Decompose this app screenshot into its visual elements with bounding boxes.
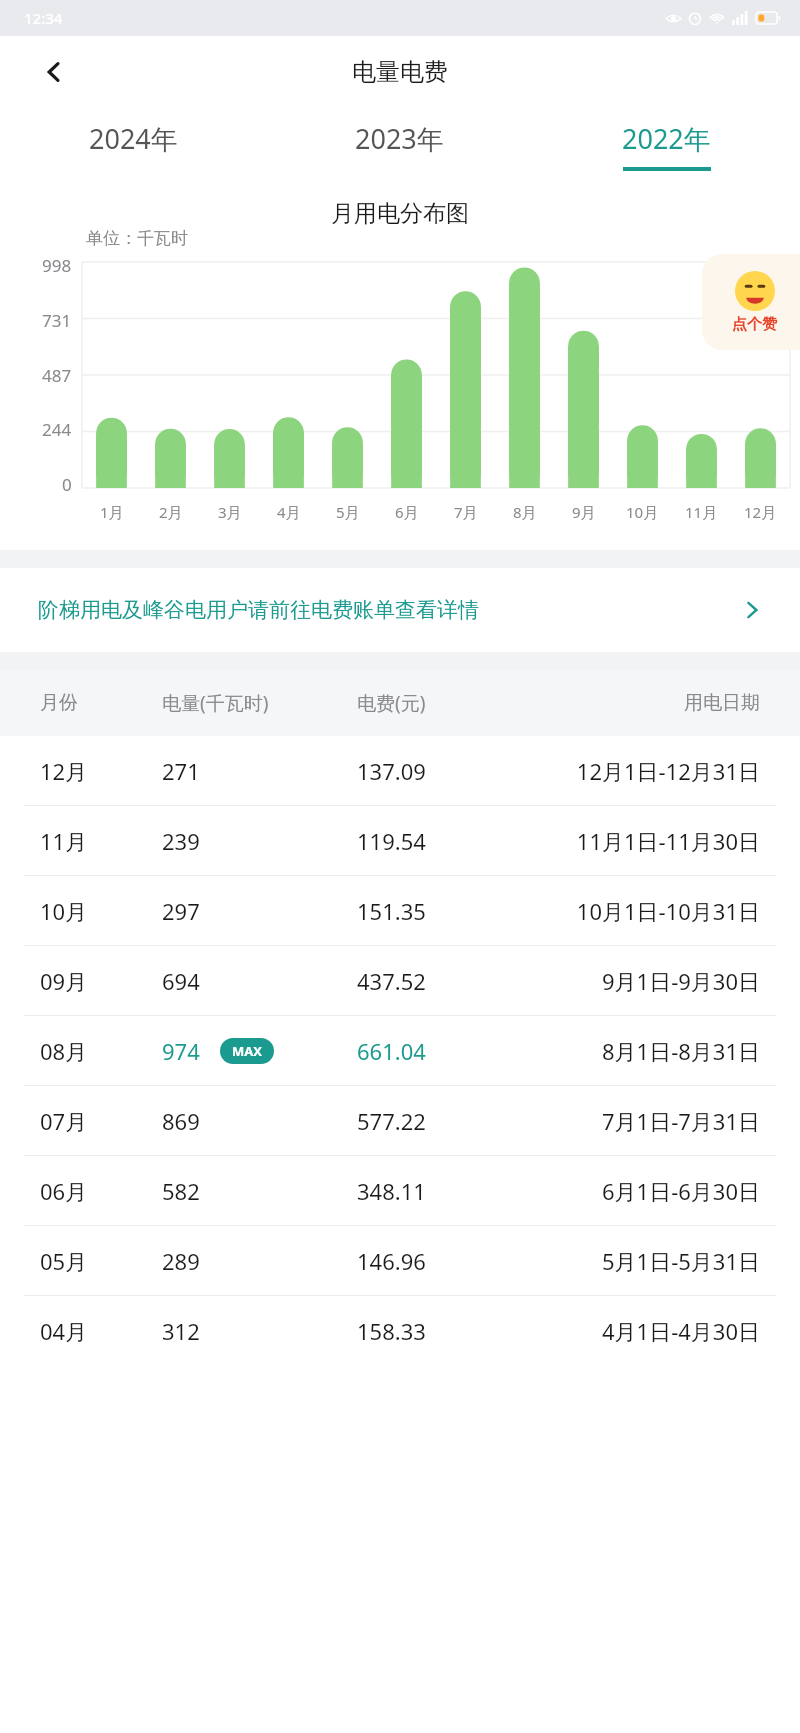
- button[interactable]: 点个赞: [702, 254, 800, 350]
- staticText: 点个赞: [732, 315, 777, 334]
- button[interactable]: 05月: [0, 1226, 800, 1295]
- staticText: 12月: [40, 756, 162, 786]
- staticText: 9月: [572, 502, 596, 522]
- staticText: 119.54: [357, 826, 540, 856]
- button[interactable]: 11月: [0, 806, 800, 875]
- staticText: 998: [42, 254, 72, 277]
- staticText: 137.09: [357, 756, 540, 786]
- staticText: 2月: [159, 502, 183, 522]
- button[interactable]: 07月: [0, 1086, 800, 1155]
- staticText: 月份: [40, 691, 162, 715]
- staticText: 阶梯用电及峰谷电用户请前往电费账单查看详情: [38, 597, 742, 623]
- staticText: 158.33: [357, 1316, 540, 1346]
- staticText: 271: [162, 756, 200, 786]
- staticText: 694: [162, 966, 200, 996]
- staticText: 582: [162, 1176, 200, 1206]
- staticText: 312: [162, 1316, 200, 1346]
- staticText: 12:34: [24, 8, 63, 28]
- staticText: 1月: [100, 502, 124, 522]
- staticText: 5月1日-5月31日: [540, 1246, 760, 1276]
- button[interactable]: 09月: [0, 946, 800, 1015]
- staticText: 5月: [336, 502, 360, 522]
- staticText: 6月1日-6月30日: [540, 1176, 760, 1206]
- staticText: 08月: [40, 1036, 162, 1066]
- staticText: 2024年: [89, 120, 178, 157]
- button[interactable]: 2023年: [266, 108, 533, 183]
- staticText: 电量电费: [352, 57, 448, 87]
- staticText: 244: [42, 418, 72, 441]
- button[interactable]: 04月: [0, 1296, 800, 1365]
- staticText: 电量(千瓦时): [162, 690, 357, 716]
- staticText: 577.22: [357, 1106, 540, 1136]
- staticText: 11月: [40, 826, 162, 856]
- staticText: 974: [162, 1036, 200, 1066]
- staticText: 10月1日-10月31日: [540, 896, 760, 926]
- staticText: 151.35: [357, 896, 540, 926]
- staticText: 437.52: [357, 966, 540, 996]
- staticText: 11月: [685, 502, 718, 522]
- staticText: 239: [162, 826, 200, 856]
- staticText: 04月: [40, 1316, 162, 1346]
- staticText: 07月: [40, 1106, 162, 1136]
- button[interactable]: 2022年: [533, 108, 800, 183]
- staticText: 电费(元): [357, 690, 540, 716]
- staticText: 05月: [40, 1246, 162, 1276]
- staticText: 8月1日-8月31日: [540, 1036, 760, 1066]
- staticText: 用电日期: [540, 691, 760, 715]
- button[interactable]: 阶梯用电及峰谷电用户请前往电费账单查看详情: [0, 568, 800, 652]
- staticText: 2023年: [355, 120, 444, 157]
- staticText: 12月: [744, 502, 777, 522]
- staticText: 487: [42, 364, 72, 387]
- staticText: 4月: [277, 502, 301, 522]
- staticText: 297: [162, 896, 200, 926]
- staticText: 661.04: [357, 1036, 540, 1066]
- staticText: 869: [162, 1106, 200, 1136]
- staticText: 9月1日-9月30日: [540, 966, 760, 996]
- staticText: 289: [162, 1246, 200, 1276]
- button[interactable]: 10月: [0, 876, 800, 945]
- staticText: 7月: [454, 502, 478, 522]
- staticText: 3月: [218, 502, 242, 522]
- staticText: 12月1日-12月31日: [540, 756, 760, 786]
- staticText: 348.11: [357, 1176, 540, 1206]
- staticText: 06月: [40, 1176, 162, 1206]
- button[interactable]: 08月: [0, 1016, 800, 1085]
- staticText: 8月: [513, 502, 537, 522]
- staticText: 6月: [395, 502, 419, 522]
- button[interactable]: 12月: [0, 736, 800, 805]
- staticText: 7月1日-7月31日: [540, 1106, 760, 1136]
- staticText: 2022年: [622, 120, 711, 157]
- staticText: 4月1日-4月30日: [540, 1316, 760, 1346]
- staticText: 731: [42, 309, 72, 332]
- staticText: 09月: [40, 966, 162, 996]
- staticText: 10月: [626, 502, 659, 522]
- button[interactable]: 2024年: [0, 108, 266, 183]
- staticText: 月用电分布图: [331, 199, 469, 228]
- staticText: MAX: [232, 1042, 262, 1060]
- button[interactable]: 06月: [0, 1156, 800, 1225]
- staticText: 单位：千瓦时: [86, 228, 188, 249]
- button[interactable]: Back: [34, 52, 74, 92]
- staticText: 11月1日-11月30日: [540, 826, 760, 856]
- staticText: 0: [62, 473, 72, 496]
- staticText: 146.96: [357, 1246, 540, 1276]
- staticText: 10月: [40, 896, 162, 926]
